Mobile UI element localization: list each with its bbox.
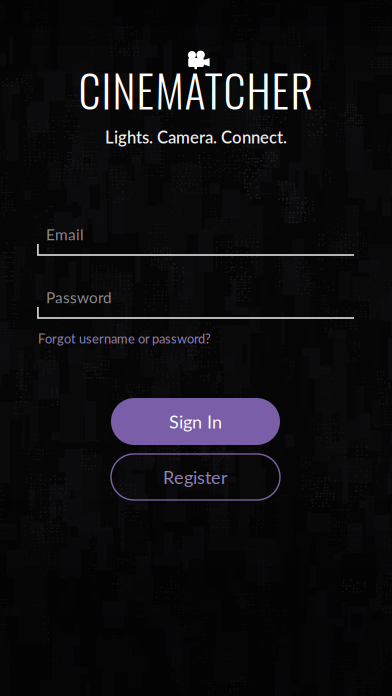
button[interactable]: Sign In <box>111 398 280 445</box>
staticText: Forgot username or password? <box>38 331 211 346</box>
staticText: Password <box>46 288 112 306</box>
staticText: Lights. Camera. Connect. <box>105 127 287 147</box>
staticText: Email <box>46 225 84 243</box>
staticText: Sign In <box>169 411 222 432</box>
button[interactable]: Forgot username or password? <box>38 331 228 346</box>
staticText: CINEMATCHER <box>78 57 313 122</box>
staticText: Register <box>163 466 228 488</box>
button[interactable]: Register <box>111 454 280 500</box>
